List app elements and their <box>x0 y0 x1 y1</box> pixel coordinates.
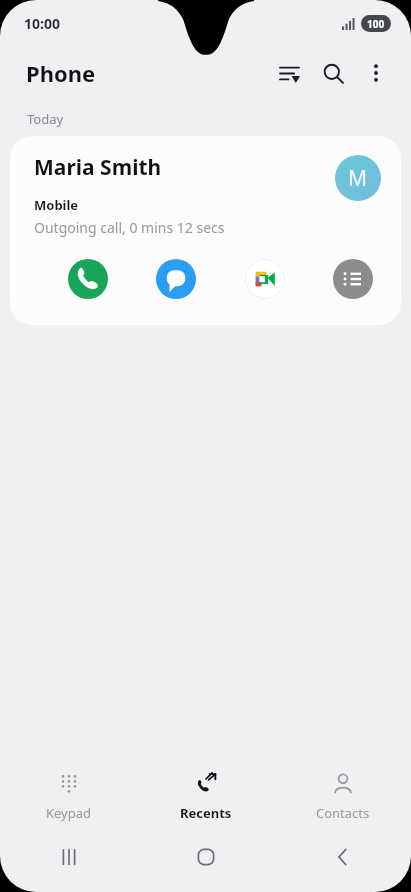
staticText: Phone <box>26 58 96 88</box>
staticText: Maria Smith <box>34 153 162 182</box>
button[interactable]: Recents <box>137 758 274 834</box>
staticText: 100 <box>367 17 385 31</box>
staticText: 10:00 <box>24 14 60 33</box>
staticText: Contacts <box>316 804 370 822</box>
staticText: M <box>348 164 368 193</box>
button[interactable]: Recent apps <box>0 834 137 880</box>
staticText: Recents <box>180 804 232 822</box>
button[interactable]: Video call <box>245 259 285 299</box>
staticText: Outgoing call, 0 mins 12 secs <box>34 218 225 237</box>
button[interactable]: Home <box>137 834 274 880</box>
button[interactable]: Back <box>274 834 411 880</box>
button[interactable]: Details <box>333 259 373 299</box>
button[interactable]: Maria Smith <box>10 136 401 325</box>
button[interactable]: Keypad <box>0 758 137 834</box>
staticText: Keypad <box>46 804 92 822</box>
button[interactable]: Contacts <box>274 758 411 834</box>
staticText: Today <box>27 110 64 128</box>
button[interactable]: Message <box>156 259 196 299</box>
button[interactable]: More options <box>355 52 397 94</box>
staticText: Mobile <box>34 196 79 214</box>
button[interactable]: Sort <box>267 51 311 95</box>
button[interactable]: Call <box>68 259 108 299</box>
button[interactable]: Search <box>311 51 355 95</box>
